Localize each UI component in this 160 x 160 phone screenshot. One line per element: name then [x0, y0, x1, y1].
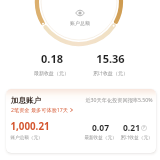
staticText: 0.07 [92, 122, 109, 134]
staticText: 0.21 [123, 122, 140, 134]
staticText: 累计收益（元） [93, 70, 128, 76]
button[interactable]: Toggle balance visibility [64, 10, 96, 26]
staticText: 近30天年化投资回报率5.50% [85, 96, 153, 103]
button[interactable]: Help [141, 125, 147, 131]
staticText: 0.18 [41, 51, 63, 66]
staticText: 加息账户 [11, 96, 41, 105]
staticText: 账户总额 [70, 20, 90, 26]
staticText: 15.36 [96, 51, 125, 66]
staticText: 最新收益（元） [34, 70, 69, 76]
staticText: 2笔资金 最多可体验17天 [11, 106, 68, 113]
staticText: 账户总额（元） [10, 135, 43, 141]
staticText: 最新收益（元） [84, 135, 116, 141]
staticText: 累计收益（元） [120, 135, 152, 141]
button[interactable]: 加息账户 [6, 89, 156, 153]
staticText: 1,000.21 [10, 120, 50, 133]
staticText: ? [143, 125, 145, 131]
